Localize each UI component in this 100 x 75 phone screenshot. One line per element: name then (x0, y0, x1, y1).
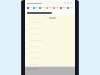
button[interactable]: Formatting tool (33, 6, 38, 9)
button[interactable]: Document page (29, 15, 75, 66)
button[interactable]: Formatting tool (27, 6, 32, 9)
button[interactable]: Section heading (27, 12, 52, 14)
button[interactable]: Formatting tool (53, 6, 59, 9)
button[interactable]: Formatting tool (67, 6, 73, 9)
button[interactable]: Header action (67, 12, 69, 14)
button[interactable]: Header action (64, 12, 66, 14)
button[interactable]: Formatting tool (46, 6, 52, 9)
button[interactable]: Header action (70, 12, 72, 14)
button[interactable]: Formatting tool (39, 6, 45, 9)
button[interactable]: Formatting tool (60, 6, 66, 9)
